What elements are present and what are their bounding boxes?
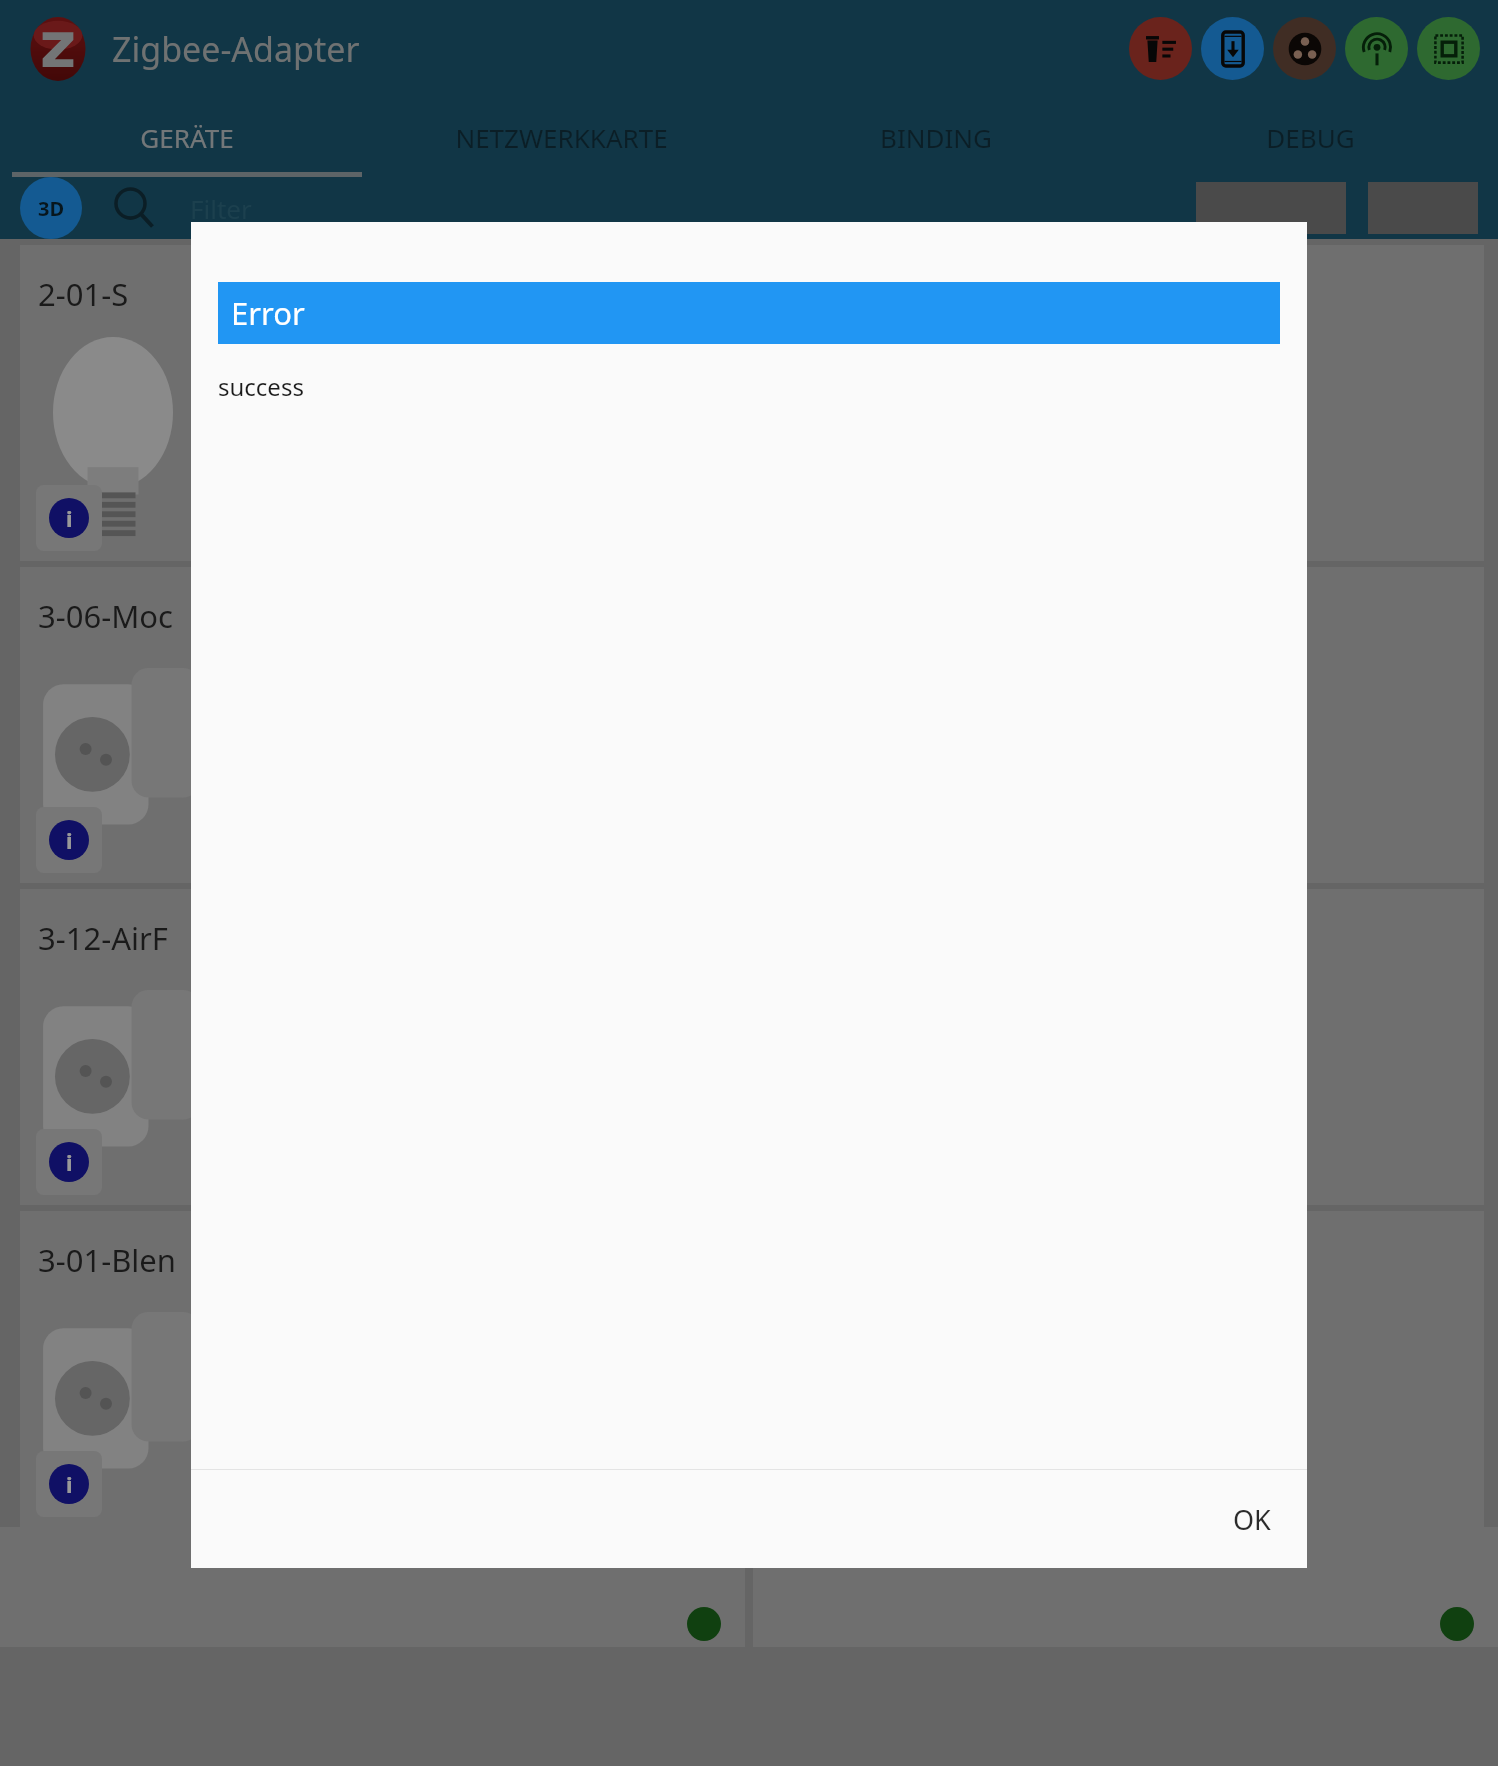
button[interactable]: Delete devices [1129,17,1192,80]
button[interactable]: Install device [1201,17,1264,80]
staticText: i [66,825,73,855]
button[interactable]: Info [36,807,102,873]
staticText: 3D [38,195,65,222]
staticText: 3-12-AirF [38,917,168,959]
button[interactable]: OK [1217,1489,1287,1550]
staticText: GERÄTE [140,120,234,155]
other: Search [112,186,156,230]
button[interactable]: 3D view [20,177,82,239]
button[interactable]: 3-01-Blen [20,1211,1484,1527]
button[interactable] [1196,182,1346,234]
button[interactable]: BINDING [748,97,1123,177]
staticText: DEBUG [1266,120,1355,155]
staticText: BINDING [880,120,992,155]
staticText: i [66,503,73,533]
button[interactable]: 2-01-S [20,245,1484,561]
button[interactable]: 3-12-AirF [20,889,1484,1205]
button[interactable]: GERÄTE [0,97,374,177]
button[interactable]: 3-06-Moc [20,567,1484,883]
staticText: 3-06-Moc [38,595,173,637]
button[interactable]: DEBUG [1123,97,1498,177]
staticText: 2-01-S [38,273,129,315]
button[interactable]: Info [36,1129,102,1195]
button[interactable]: Info [36,1451,102,1517]
staticText: success [218,370,304,403]
button[interactable] [0,1527,745,1647]
button[interactable]: Groups [1273,17,1336,80]
button[interactable] [753,1527,1498,1647]
staticText: Filter [190,191,252,226]
staticText: 3-01-Blen [38,1239,176,1281]
staticText: NETZWERKKARTE [455,120,668,155]
button[interactable]: Info [36,485,102,551]
staticText: OK [1233,1501,1271,1538]
staticText: i [66,1469,73,1499]
staticText: Error [231,292,305,334]
button[interactable]: NETZWERKKARTE [374,97,748,177]
staticText: Zigbee-Adapter [112,26,360,72]
button[interactable]: Firmware [1417,17,1480,80]
button[interactable]: Pairing [1345,17,1408,80]
staticText: i [66,1147,73,1177]
